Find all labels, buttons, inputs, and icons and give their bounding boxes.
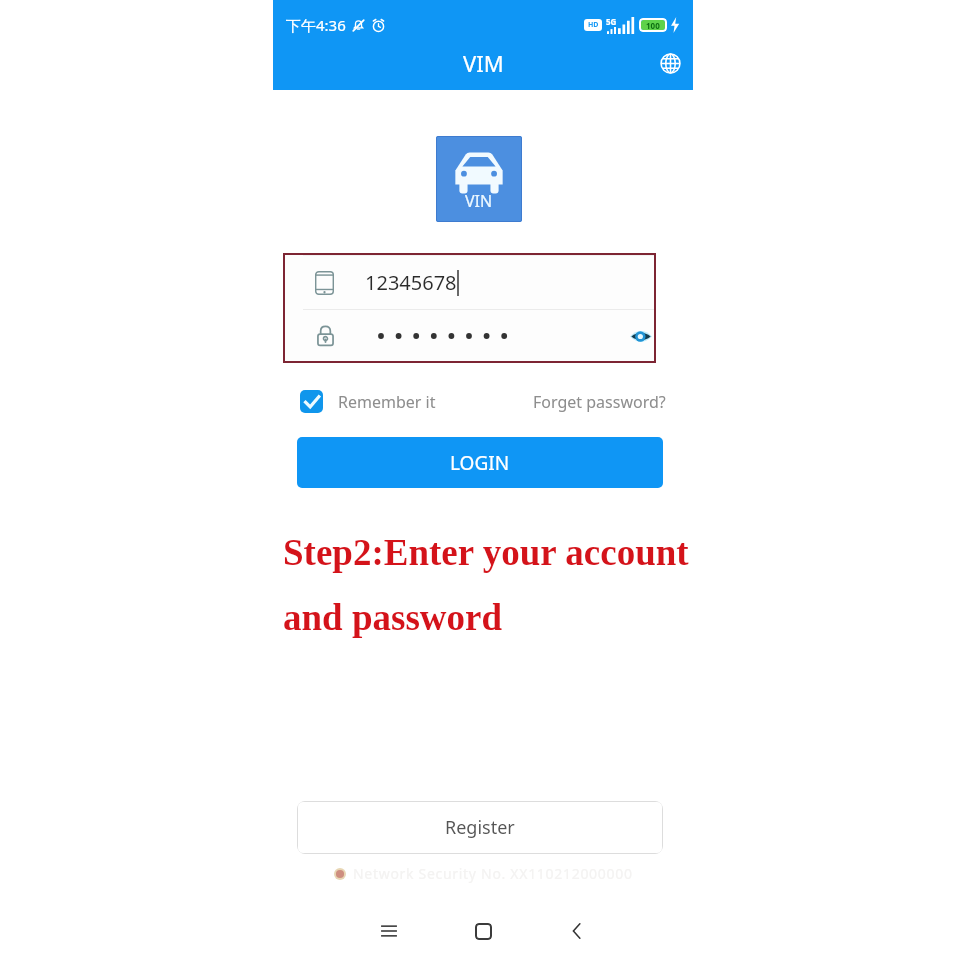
button[interactable]: Recent apps [342, 911, 436, 951]
button[interactable]: Home [436, 911, 530, 951]
staticText: Register [445, 815, 515, 840]
staticText: 下午4:36 [286, 15, 346, 35]
button[interactable]: LOGIN [297, 437, 663, 488]
staticText: Network Security No. XX110212000000 [353, 864, 633, 883]
button[interactable]: Back [530, 911, 624, 951]
button[interactable]: Register [297, 801, 663, 854]
staticText: HD [588, 20, 599, 30]
staticText: Forget password? [533, 391, 666, 413]
staticText: LOGIN [450, 450, 510, 476]
button[interactable]: Language [655, 48, 685, 78]
staticText: 12345678 [365, 269, 457, 296]
button[interactable]: Forget password? [533, 391, 666, 413]
staticText: Remember it [338, 391, 436, 413]
staticText: 5G [606, 16, 617, 27]
button[interactable]: Remember it [300, 390, 436, 413]
button[interactable]: Show password [629, 323, 653, 349]
staticText: and password [283, 597, 503, 638]
staticText: VIN [465, 190, 493, 212]
staticText: VIM [463, 48, 504, 78]
staticText: Step2:Enter your account [283, 532, 689, 573]
staticText: 100 [646, 20, 660, 30]
